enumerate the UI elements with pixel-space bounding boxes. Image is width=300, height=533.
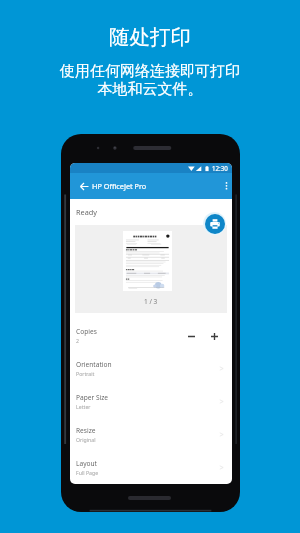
staticText: Letter	[76, 403, 91, 410]
button[interactable]: Print	[205, 214, 225, 234]
staticText: Portrait	[76, 370, 95, 377]
staticText: Orientation	[76, 360, 112, 369]
staticText: 使用任何网络连接即可打印 本地和云文件。	[60, 62, 240, 98]
staticText: 2	[76, 337, 79, 344]
staticText: Ready	[76, 207, 97, 217]
button[interactable]: Paper Size	[70, 385, 232, 418]
staticText: Full Page	[76, 469, 99, 476]
button[interactable]: Copies	[70, 319, 232, 352]
button[interactable]: Increase copies	[207, 329, 221, 343]
staticText: Copies	[76, 327, 97, 336]
staticText: 1 / 3	[144, 297, 158, 306]
button[interactable]: Resize	[70, 418, 232, 451]
staticText: 12:30	[212, 164, 228, 172]
staticText: 随处打印	[109, 24, 191, 50]
button[interactable]: More options	[220, 176, 232, 196]
staticText: HP OfficeJet Pro	[92, 181, 147, 191]
button[interactable]: Back	[77, 179, 91, 193]
staticText: Resize	[76, 426, 96, 435]
button[interactable]: Decrease copies	[184, 329, 198, 343]
staticText: Paper Size	[76, 393, 109, 402]
staticText: Original	[76, 436, 96, 443]
staticText: Layout	[76, 459, 97, 468]
button[interactable]: Orientation	[70, 352, 232, 385]
button[interactable]: Layout	[70, 451, 232, 484]
